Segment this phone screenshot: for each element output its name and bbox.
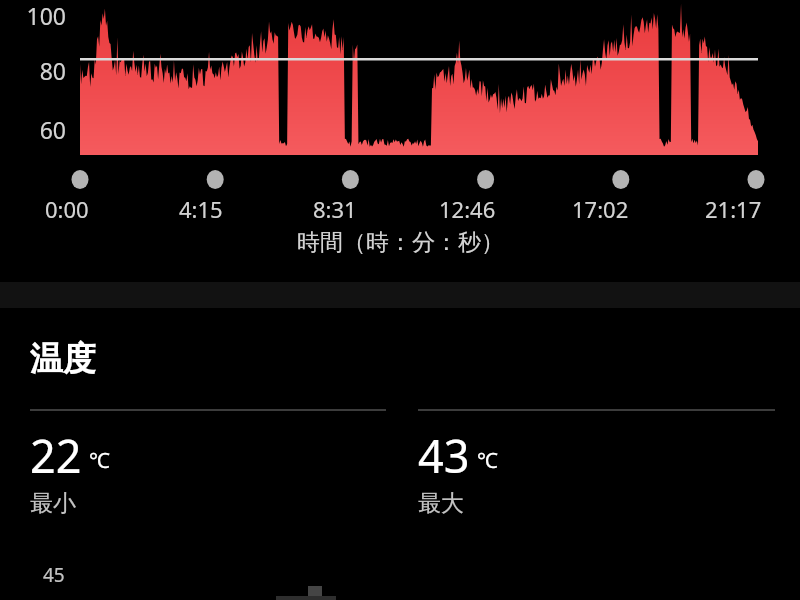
staticText: 45 — [43, 562, 65, 588]
staticText: 0:00 — [45, 194, 89, 224]
staticText: 60 — [0, 114, 66, 145]
staticText: 100 — [0, 0, 66, 31]
staticText: 22 — [30, 425, 82, 486]
button[interactable]: 43 — [418, 409, 775, 518]
staticText: ℃ — [89, 446, 110, 475]
staticText: 80 — [0, 55, 66, 86]
staticText: 8:31 — [313, 194, 357, 224]
staticText: 最小 — [30, 489, 76, 518]
staticText: 時間（時：分：秒） — [297, 228, 504, 257]
staticText: 12:46 — [439, 194, 496, 224]
staticText: 最大 — [418, 489, 464, 518]
staticText: 温度 — [30, 338, 96, 380]
staticText: ℃ — [477, 446, 498, 475]
staticText: 4:15 — [179, 194, 223, 224]
staticText: 21:17 — [705, 194, 762, 224]
staticText: 43 — [418, 425, 470, 486]
staticText: 17:02 — [572, 194, 629, 224]
button[interactable]: 22 — [30, 409, 386, 518]
